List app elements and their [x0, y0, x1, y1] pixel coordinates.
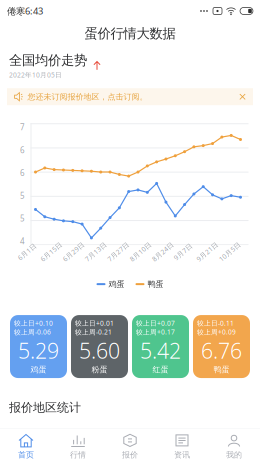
button[interactable]: 较上日+0.01: [71, 315, 128, 378]
staticText: 较上日+0.01: [75, 319, 114, 327]
staticText: 我的: [226, 450, 242, 460]
staticText: 粉蛋: [91, 365, 107, 374]
button[interactable]: 首页: [0, 428, 52, 463]
staticText: 6: [20, 145, 25, 155]
staticText: 5.60: [79, 336, 120, 365]
button[interactable]: 报价: [104, 428, 156, 463]
staticText: 2022年10月05日: [9, 70, 62, 79]
staticText: 报价: [122, 450, 138, 460]
staticText: 7月27日: [105, 247, 131, 256]
staticText: 较上日-0.11: [197, 319, 234, 327]
staticText: 较上日+0.10: [14, 319, 53, 327]
staticText: 5: [20, 213, 25, 224]
staticText: 5: [20, 190, 25, 201]
staticText: 倦寒6:43: [7, 5, 43, 17]
staticText: 资讯: [174, 450, 190, 460]
staticText: 7: [20, 122, 25, 132]
staticText: 6月1日: [16, 247, 38, 256]
button[interactable]: 较上日+0.10: [10, 315, 67, 378]
button[interactable]: 较上日-0.11: [193, 315, 250, 378]
staticText: 6月29日: [61, 247, 87, 256]
staticText: 6.76: [201, 336, 242, 365]
staticText: 您还未订阅报价地区，点击订阅。: [27, 92, 147, 102]
staticText: 行情: [70, 450, 86, 460]
staticText: 9月7日: [172, 247, 194, 256]
staticText: 5.29: [18, 336, 59, 365]
button[interactable]: 资讯: [156, 428, 208, 463]
staticText: 首页: [18, 450, 34, 460]
button[interactable]: 较上日+0.07: [132, 315, 189, 378]
staticText: 较上周-0.06: [14, 327, 51, 336]
staticText: 6: [20, 167, 25, 178]
staticText: 红蛋: [152, 365, 168, 374]
staticText: 8月24日: [150, 247, 176, 256]
staticText: 较上周+0.17: [136, 327, 175, 336]
staticText: 6月15日: [38, 247, 64, 256]
button[interactable]: 您还未订阅报价地区，点击订阅。: [7, 88, 253, 105]
button[interactable]: 行情: [52, 428, 104, 463]
staticText: 较上周-0.21: [75, 327, 112, 336]
staticText: 鸡蛋: [30, 365, 46, 374]
button[interactable]: 我的: [208, 428, 260, 463]
staticText: 5.42: [140, 336, 181, 365]
staticText: 9月21日: [194, 247, 220, 256]
staticText: 8月10日: [127, 247, 153, 256]
staticText: 报价地区统计: [9, 400, 81, 415]
staticText: 7月13日: [83, 247, 109, 256]
staticText: 鸭蛋: [213, 365, 229, 374]
staticText: 鸭蛋: [147, 279, 163, 289]
staticText: 鸡蛋: [108, 279, 124, 289]
staticText: 较上日+0.07: [136, 319, 175, 327]
staticText: 4: [20, 236, 25, 246]
staticText: 10月5日: [217, 247, 243, 256]
staticText: 蛋价行情大数据: [84, 25, 175, 42]
staticText: 较上周+0.09: [197, 327, 236, 336]
staticText: 全国均价走势: [9, 52, 87, 68]
